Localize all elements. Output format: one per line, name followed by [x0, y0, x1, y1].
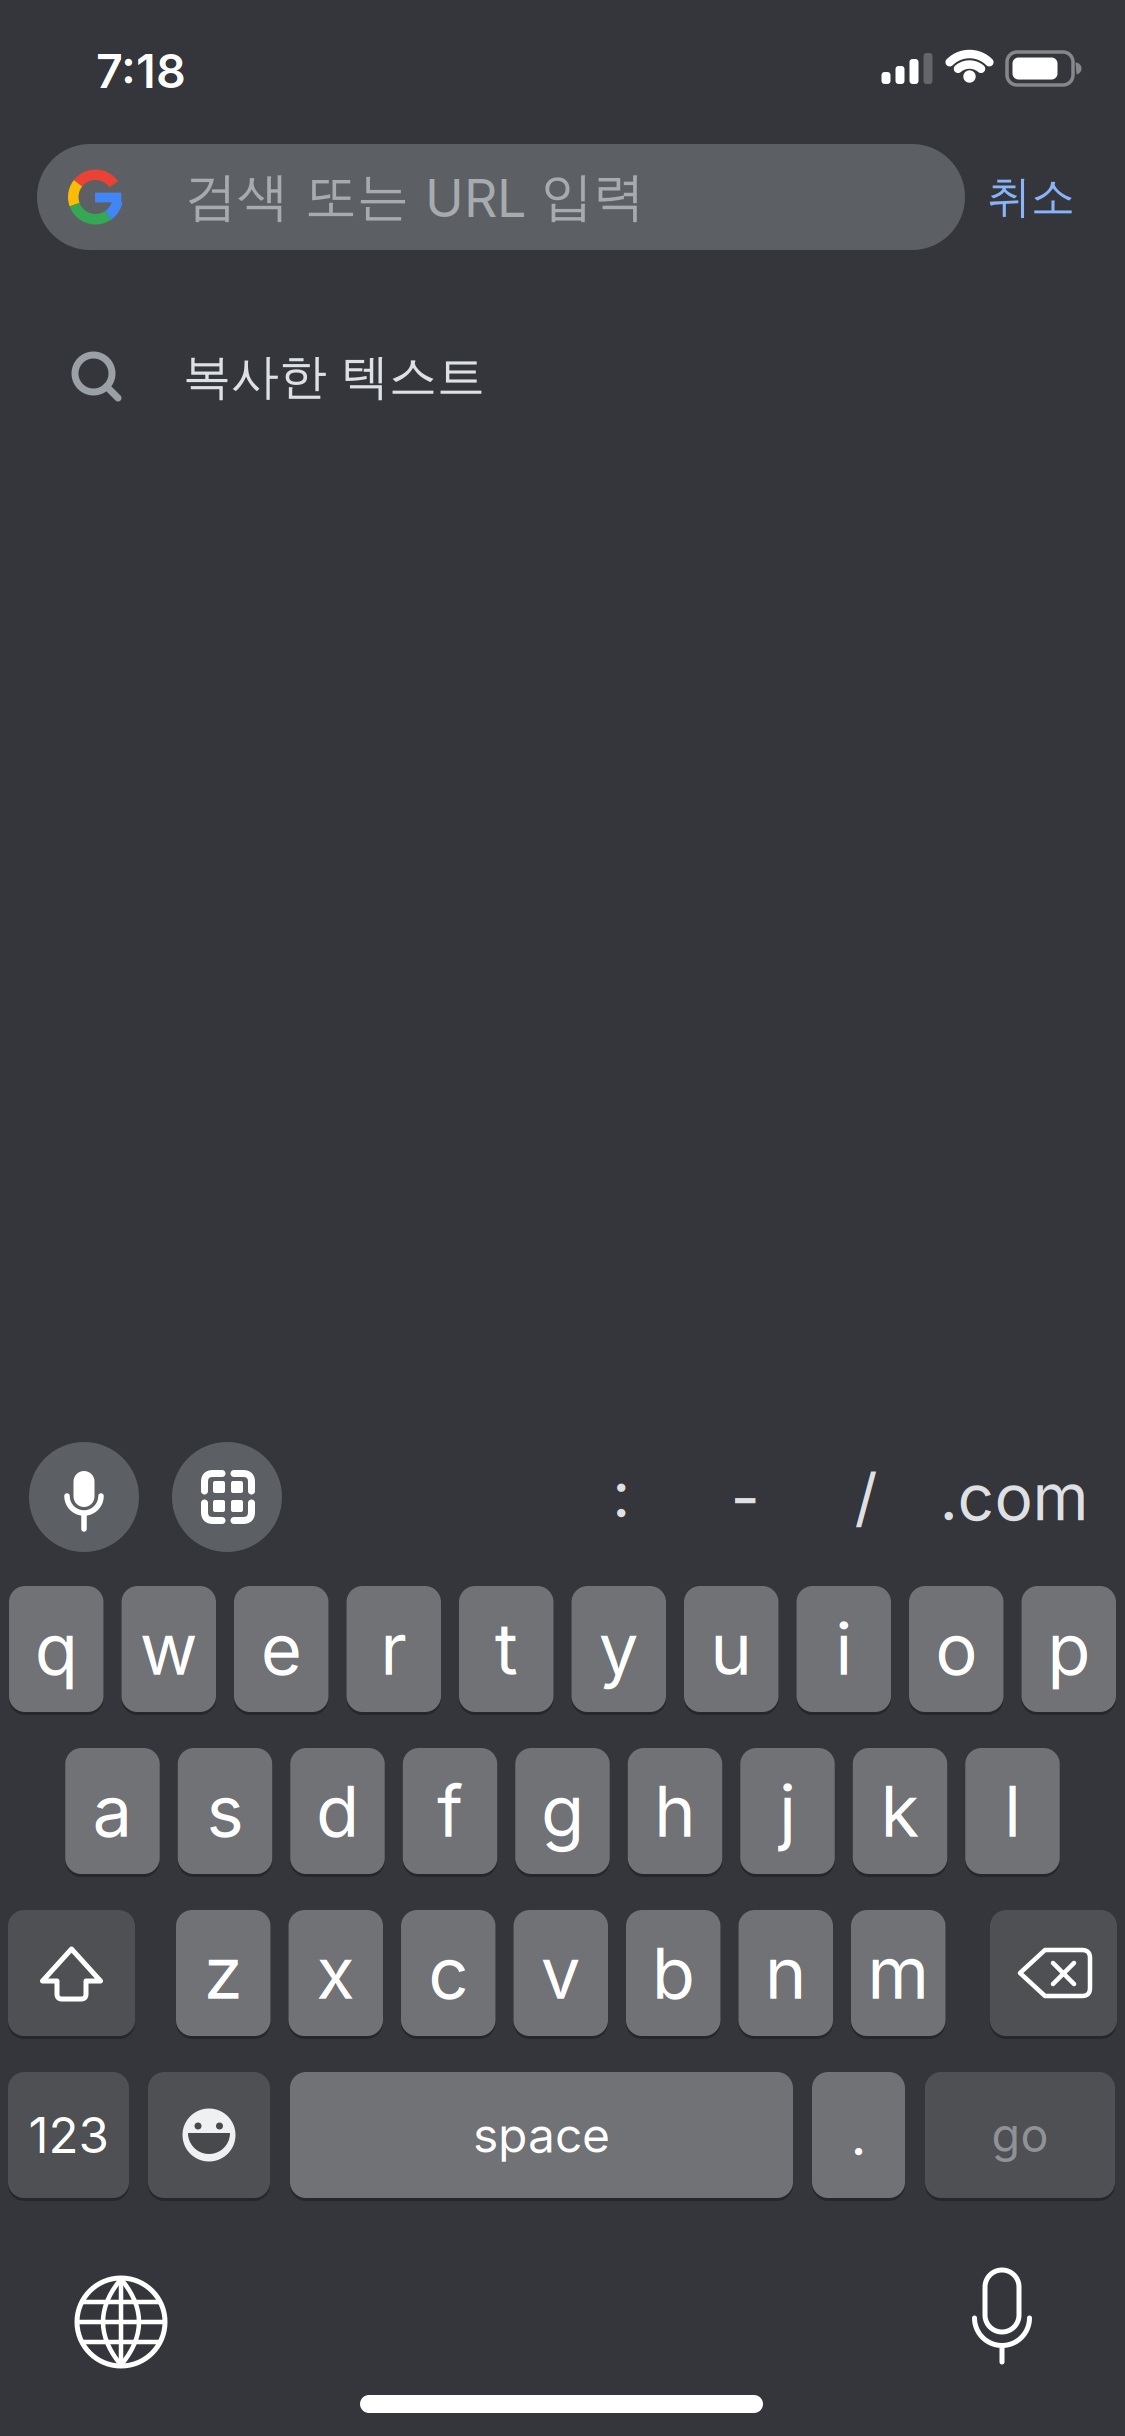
- button[interactable]: f: [403, 1748, 497, 1877]
- button[interactable]: /: [821, 1442, 911, 1552]
- staticText: go: [991, 2107, 1048, 2163]
- staticText: space: [473, 2106, 610, 2164]
- staticText: q: [35, 1606, 78, 1692]
- button[interactable]: g: [515, 1748, 610, 1877]
- staticText: a: [92, 1768, 132, 1854]
- staticText: i: [835, 1606, 852, 1692]
- button[interactable]: -: [700, 1442, 790, 1552]
- staticText: b: [652, 1930, 695, 2016]
- staticText: d: [316, 1768, 359, 1854]
- button[interactable]: t: [459, 1586, 553, 1715]
- button[interactable]: o: [909, 1586, 1003, 1715]
- button[interactable]: l: [965, 1748, 1060, 1877]
- staticText: -: [730, 1458, 759, 1536]
- button[interactable]: go: [925, 2072, 1115, 2201]
- staticText: 123: [28, 2105, 108, 2165]
- staticText: t: [495, 1606, 518, 1692]
- staticText: .com: [939, 1458, 1088, 1536]
- button[interactable]: p: [1021, 1586, 1116, 1715]
- button[interactable]: i: [796, 1586, 891, 1715]
- button[interactable]: 123: [8, 2072, 129, 2201]
- button[interactable]: [148, 2072, 270, 2201]
- staticText: :: [612, 1455, 630, 1533]
- button[interactable]: a: [65, 1748, 160, 1877]
- button[interactable]: k: [853, 1748, 947, 1877]
- staticText: 7:18: [96, 43, 186, 99]
- staticText: r: [380, 1606, 407, 1692]
- button[interactable]: .: [812, 2072, 905, 2201]
- staticText: y: [599, 1606, 639, 1692]
- button[interactable]: n: [738, 1910, 833, 2039]
- staticText: v: [541, 1930, 581, 2016]
- staticText: c: [428, 1930, 468, 2016]
- button[interactable]: d: [290, 1748, 385, 1877]
- button[interactable]: [947, 2263, 1057, 2373]
- button[interactable]: 취소: [961, 144, 1101, 250]
- button[interactable]: v: [513, 1910, 608, 2039]
- button[interactable]: [8, 1910, 135, 2039]
- button[interactable]: c: [401, 1910, 495, 2039]
- staticText: l: [1004, 1768, 1021, 1854]
- button[interactable]: w: [121, 1586, 216, 1715]
- button[interactable]: y: [571, 1586, 666, 1715]
- staticText: o: [935, 1606, 977, 1692]
- staticText: 검색 또는 URL 입력: [185, 164, 645, 230]
- button[interactable]: z: [176, 1910, 270, 2039]
- button[interactable]: :: [576, 1439, 666, 1549]
- button[interactable]: 복사한 텍스트: [0, 322, 1125, 432]
- staticText: /: [854, 1458, 877, 1536]
- staticText: s: [206, 1768, 243, 1854]
- button[interactable]: [990, 1910, 1117, 2039]
- button[interactable]: r: [346, 1586, 441, 1715]
- staticText: h: [654, 1768, 696, 1854]
- staticText: f: [437, 1768, 463, 1854]
- staticText: z: [204, 1930, 243, 2016]
- button[interactable]: h: [628, 1748, 722, 1877]
- staticText: .: [850, 2101, 866, 2169]
- staticText: p: [1047, 1606, 1090, 1692]
- staticText: m: [867, 1930, 929, 2016]
- button[interactable]: .com: [939, 1442, 1089, 1552]
- staticText: x: [316, 1930, 355, 2016]
- button[interactable]: j: [740, 1748, 835, 1877]
- button[interactable]: [66, 2267, 176, 2377]
- staticText: k: [880, 1768, 919, 1854]
- staticText: e: [261, 1606, 302, 1692]
- staticText: u: [710, 1606, 752, 1692]
- staticText: 취소: [987, 169, 1075, 225]
- button[interactable]: 검색 또는 URL 입력: [37, 144, 965, 250]
- button[interactable]: [172, 1442, 282, 1552]
- button[interactable]: space: [290, 2072, 793, 2201]
- button[interactable]: e: [234, 1586, 328, 1715]
- staticText: n: [765, 1930, 807, 2016]
- button[interactable]: [29, 1442, 139, 1552]
- staticText: j: [779, 1768, 796, 1854]
- staticText: 복사한 텍스트: [183, 347, 485, 407]
- button[interactable]: b: [626, 1910, 720, 2039]
- button[interactable]: s: [178, 1748, 272, 1877]
- button[interactable]: x: [288, 1910, 383, 2039]
- staticText: w: [140, 1606, 198, 1692]
- button[interactable]: m: [851, 1910, 945, 2039]
- staticText: g: [541, 1768, 584, 1854]
- button[interactable]: q: [9, 1586, 103, 1715]
- button[interactable]: u: [684, 1586, 778, 1715]
